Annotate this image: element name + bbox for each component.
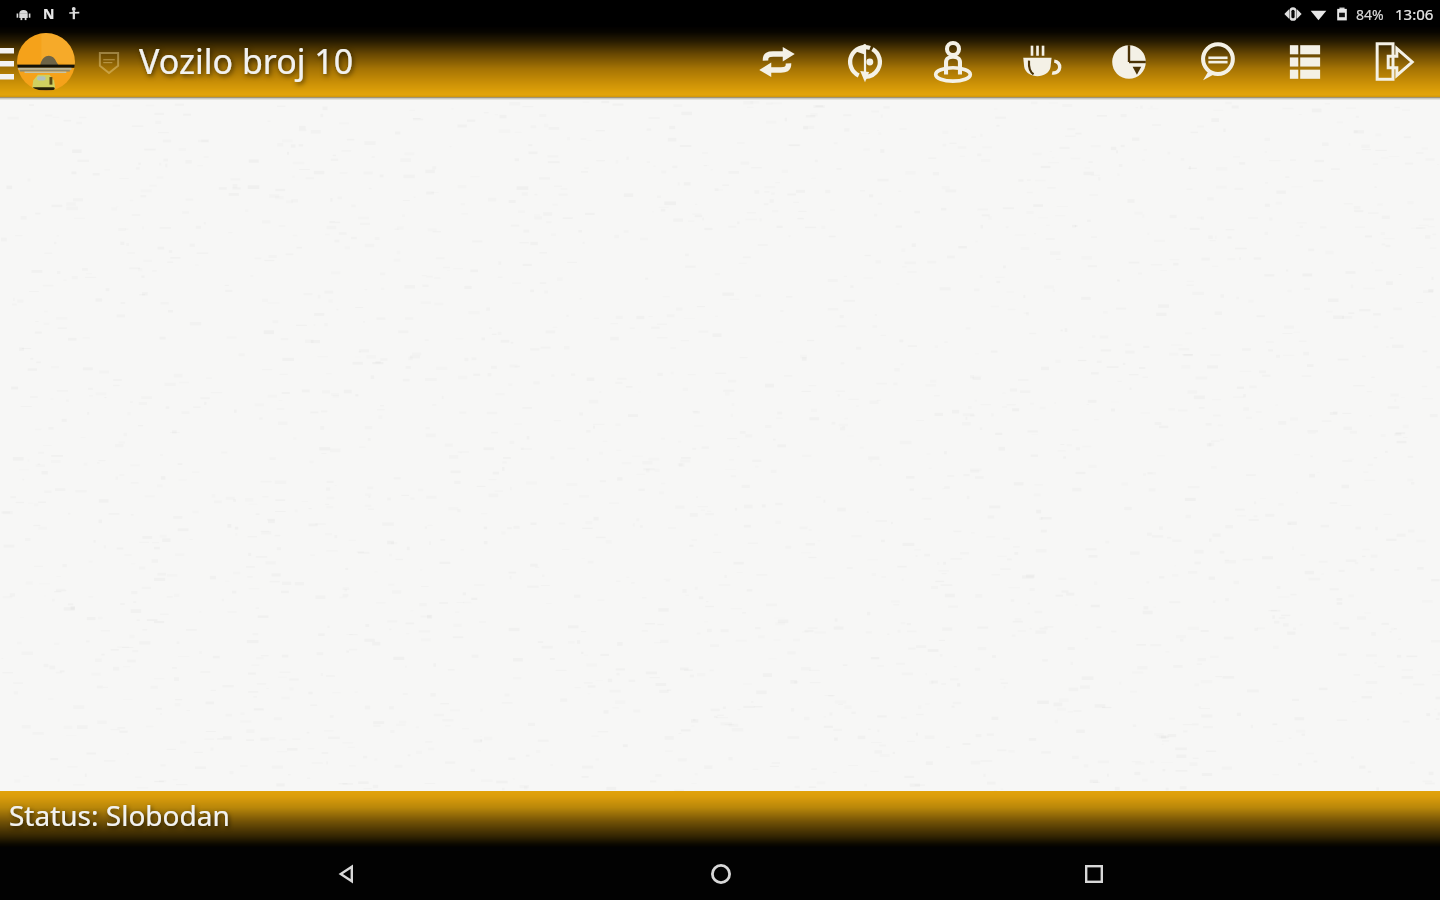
staticText: 13:06 bbox=[1395, 4, 1434, 24]
button[interactable]: Messages bbox=[1173, 27, 1261, 97]
button[interactable]: Menu bbox=[0, 27, 14, 97]
button[interactable]: Home bbox=[693, 847, 748, 900]
button[interactable]: Statistics bbox=[1085, 27, 1173, 97]
button[interactable]: Logout bbox=[1349, 27, 1437, 97]
button[interactable]: Recents bbox=[1066, 847, 1121, 900]
button[interactable]: Status: Slobodan bbox=[0, 791, 1440, 847]
button[interactable]: Back bbox=[319, 847, 374, 900]
staticText: N bbox=[43, 4, 55, 23]
button[interactable]: Refresh bbox=[821, 27, 909, 97]
staticText: Status: Slobodan bbox=[9, 796, 230, 834]
button[interactable]: Swap vehicle bbox=[733, 27, 821, 97]
staticText: 84% bbox=[1356, 5, 1384, 24]
button[interactable]: GPS status bbox=[97, 50, 121, 74]
button[interactable]: App logo bbox=[17, 33, 75, 91]
button[interactable]: Orders bbox=[1261, 27, 1349, 97]
button[interactable]: Break bbox=[997, 27, 1085, 97]
staticText: Vozilo broj 10 bbox=[139, 38, 354, 84]
button[interactable]: Driver bbox=[909, 27, 997, 97]
